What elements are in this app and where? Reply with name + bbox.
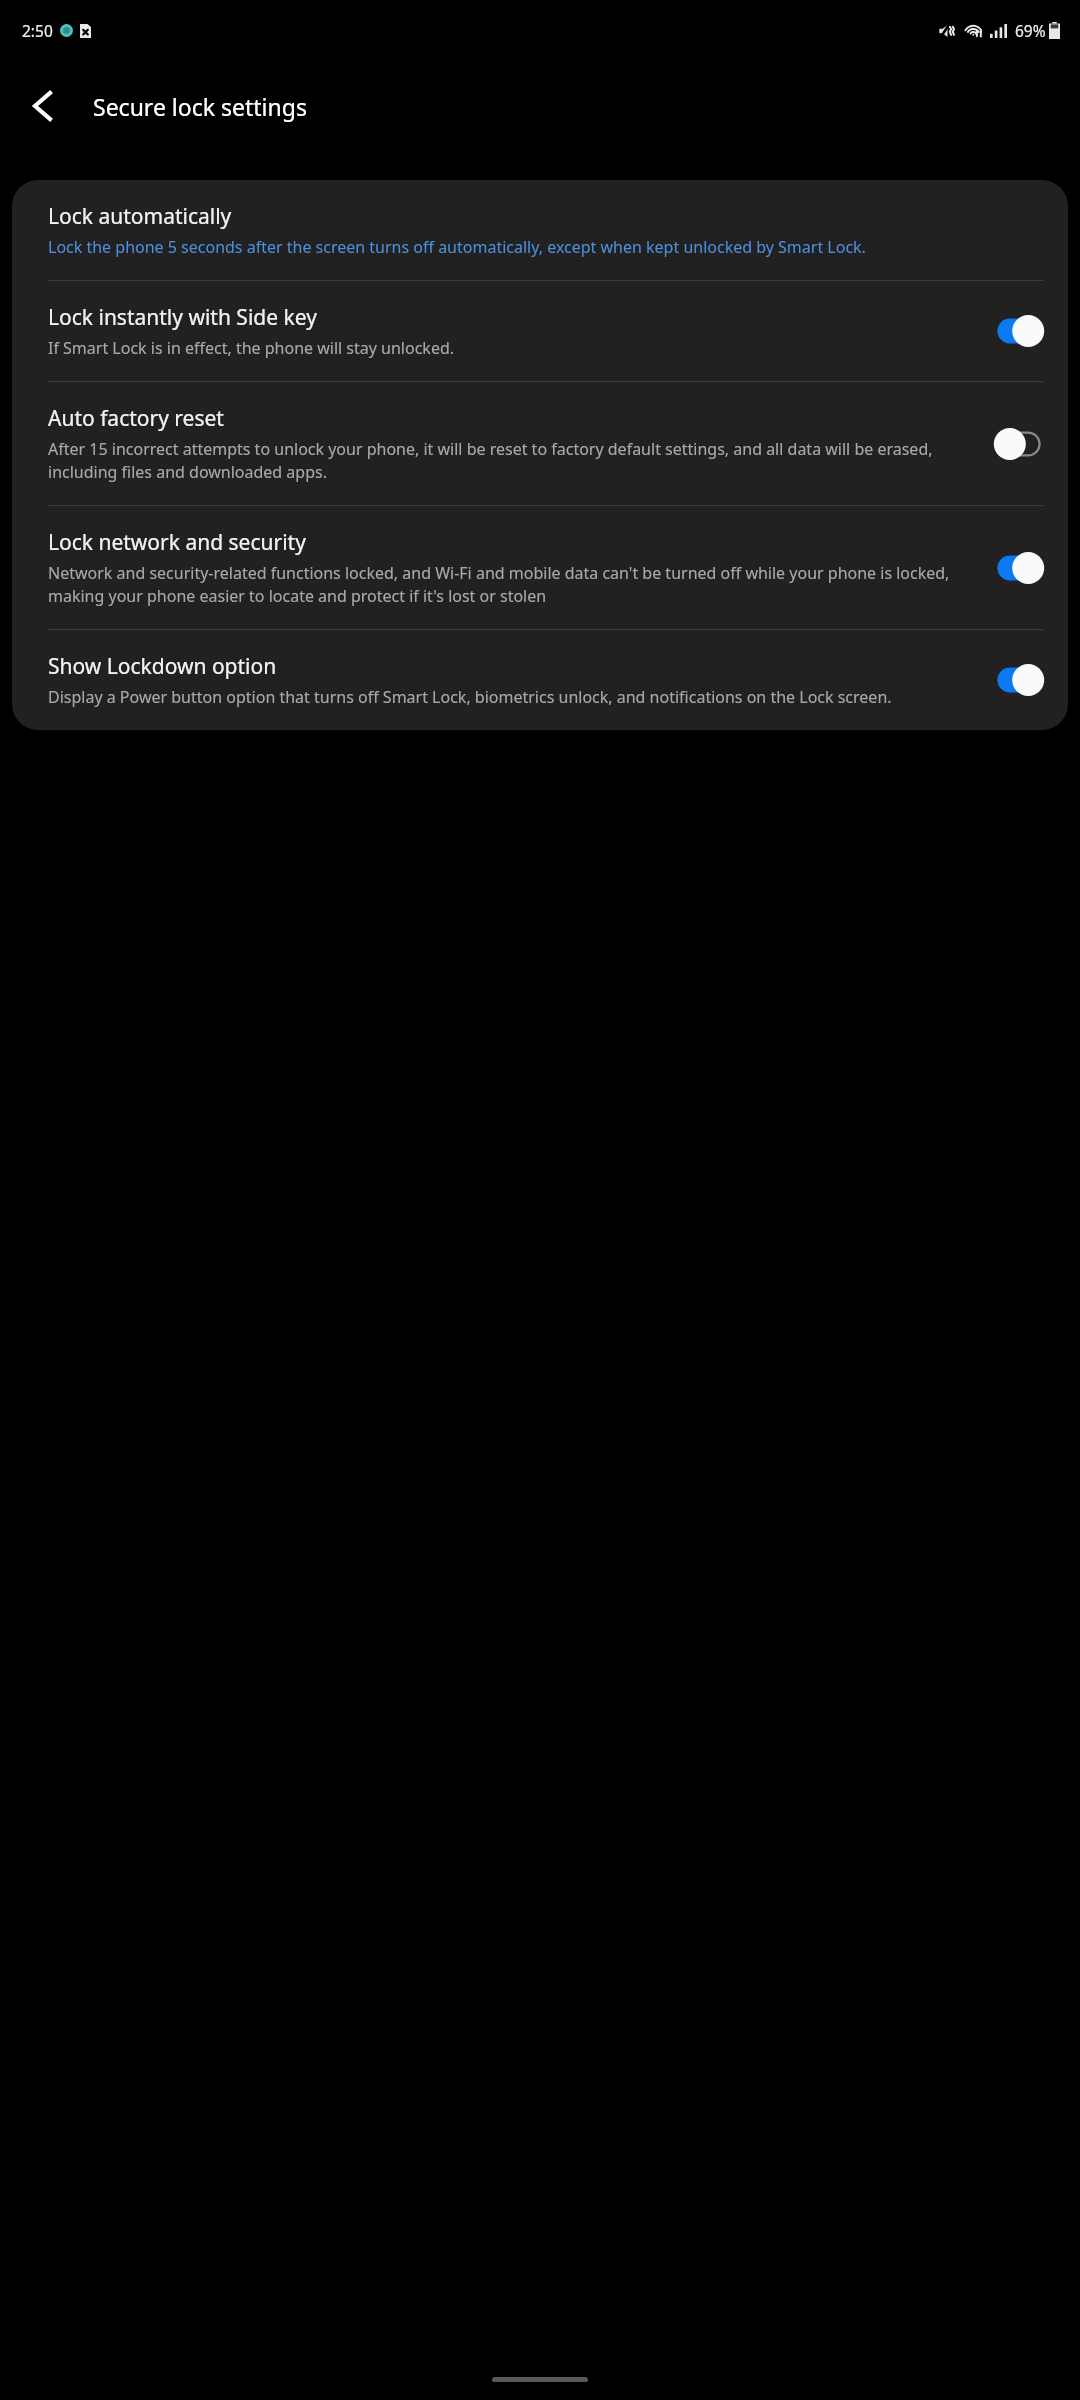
staticText: Lock network and security [48, 528, 306, 557]
staticText: Show Lockdown option [48, 652, 277, 681]
staticText: Display a Power button option that turns… [48, 686, 892, 708]
staticText: Lock the phone 5 seconds after the scree… [48, 236, 866, 258]
staticText: After 15 incorrect attempts to unlock yo… [48, 438, 978, 483]
button[interactable]: Show Lockdown option [12, 630, 1068, 730]
button[interactable]: Auto factory reset [12, 382, 1068, 505]
staticText: 2:50 [22, 20, 53, 41]
button[interactable]: Toggle on [992, 311, 1046, 351]
staticText: Lock automatically [48, 202, 232, 231]
button[interactable]: Toggle on [992, 660, 1046, 700]
button[interactable]: Toggle off [992, 424, 1046, 464]
staticText: Lock instantly with Side key [48, 303, 317, 332]
button[interactable]: Lock automatically [12, 180, 1068, 280]
button[interactable]: Toggle on [992, 548, 1046, 588]
button[interactable]: Lock instantly with Side key [12, 281, 1068, 381]
staticText: Secure lock settings [93, 91, 307, 122]
button[interactable]: Back [10, 74, 74, 138]
button[interactable]: Lock network and security [12, 506, 1068, 629]
staticText: 69% [1015, 20, 1046, 41]
staticText: If Smart Lock is in effect, the phone wi… [48, 337, 455, 359]
staticText: Network and security-related functions l… [48, 562, 978, 607]
staticText: Auto factory reset [48, 404, 224, 433]
